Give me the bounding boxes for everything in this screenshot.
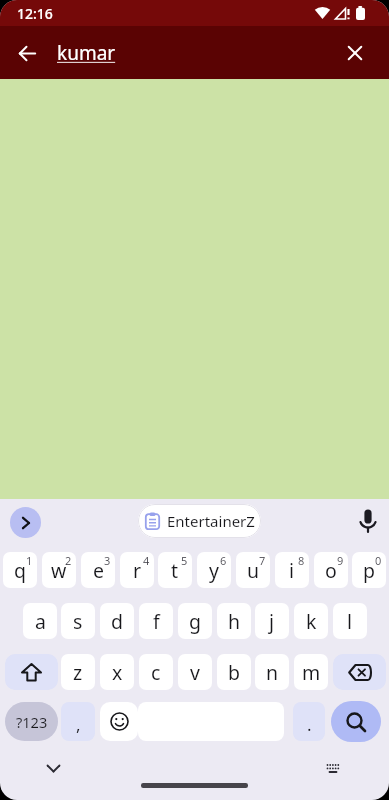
- button[interactable]: u: [236, 552, 270, 588]
- button[interactable]: c: [139, 654, 173, 690]
- staticText: 0: [375, 553, 382, 568]
- staticText: k: [306, 608, 317, 635]
- button[interactable]: [100, 702, 138, 741]
- button[interactable]: z: [61, 654, 95, 690]
- staticText: z: [73, 659, 83, 686]
- staticText: r: [133, 557, 142, 584]
- staticText: ,: [76, 713, 81, 736]
- staticText: v: [190, 659, 200, 686]
- staticText: e: [93, 557, 104, 584]
- staticText: q: [14, 557, 26, 584]
- button[interactable]: [337, 35, 373, 71]
- button[interactable]: [333, 654, 386, 690]
- staticText: i: [289, 557, 295, 584]
- button[interactable]: k: [294, 603, 328, 639]
- button[interactable]: v: [178, 654, 212, 690]
- staticText: y: [209, 557, 219, 584]
- button[interactable]: [317, 752, 349, 784]
- button[interactable]: s: [61, 603, 95, 639]
- button[interactable]: [5, 654, 58, 690]
- button[interactable]: a: [23, 603, 57, 639]
- staticText: n: [266, 659, 279, 686]
- button[interactable]: l: [333, 603, 367, 639]
- staticText: m: [302, 659, 321, 686]
- staticText: .: [307, 713, 312, 736]
- button[interactable]: b: [217, 654, 251, 690]
- staticText: l: [347, 608, 353, 635]
- staticText: o: [325, 557, 337, 584]
- staticText: w: [51, 557, 67, 584]
- staticText: d: [111, 608, 123, 635]
- staticText: 1: [26, 553, 33, 568]
- staticText: t: [171, 557, 179, 584]
- button[interactable]: g: [178, 603, 212, 639]
- button[interactable]: w: [42, 552, 76, 588]
- button[interactable]: [352, 505, 384, 537]
- button[interactable]: EntertainerZ: [138, 504, 261, 538]
- button[interactable]: e: [81, 552, 115, 588]
- staticText: h: [228, 608, 241, 635]
- staticText: 2: [65, 553, 72, 568]
- staticText: u: [247, 557, 260, 584]
- button[interactable]: o: [314, 552, 348, 588]
- staticText: x: [112, 659, 123, 686]
- button[interactable]: q: [3, 552, 37, 588]
- staticText: p: [363, 557, 375, 584]
- button[interactable]: m: [294, 654, 328, 690]
- staticText: c: [151, 659, 161, 686]
- button[interactable]: [37, 752, 69, 784]
- staticText: 3: [104, 553, 111, 568]
- staticText: 7: [259, 553, 266, 568]
- button[interactable]: ?123: [5, 702, 58, 741]
- button[interactable]: d: [100, 603, 134, 639]
- button[interactable]: h: [217, 603, 251, 639]
- staticText: s: [73, 608, 83, 635]
- staticText: 9: [337, 553, 344, 568]
- staticText: f: [153, 608, 160, 635]
- staticText: 4: [143, 553, 150, 568]
- staticText: j: [269, 608, 275, 635]
- staticText: a: [35, 608, 46, 635]
- button[interactable]: r: [120, 552, 154, 588]
- button[interactable]: i: [275, 552, 309, 588]
- staticText: 12:16: [17, 4, 53, 23]
- button[interactable]: t: [158, 552, 192, 588]
- staticText: b: [228, 659, 240, 686]
- button[interactable]: n: [255, 654, 289, 690]
- staticText: g: [189, 608, 201, 635]
- staticText: 8: [298, 553, 305, 568]
- button[interactable]: [8, 34, 46, 72]
- button[interactable]: y: [197, 552, 231, 588]
- button[interactable]: ,: [61, 702, 95, 741]
- button[interactable]: f: [139, 603, 173, 639]
- staticText: 5: [181, 553, 188, 568]
- button[interactable]: p: [352, 552, 386, 588]
- staticText: 6: [220, 553, 227, 568]
- staticText: ?123: [16, 712, 48, 732]
- staticText: kumar: [57, 40, 116, 66]
- staticText: EntertainerZ: [167, 511, 255, 531]
- button[interactable]: .: [293, 702, 325, 741]
- button[interactable]: [331, 701, 381, 742]
- button[interactable]: j: [255, 603, 289, 639]
- button[interactable]: x: [100, 654, 134, 690]
- button[interactable]: [10, 507, 41, 538]
